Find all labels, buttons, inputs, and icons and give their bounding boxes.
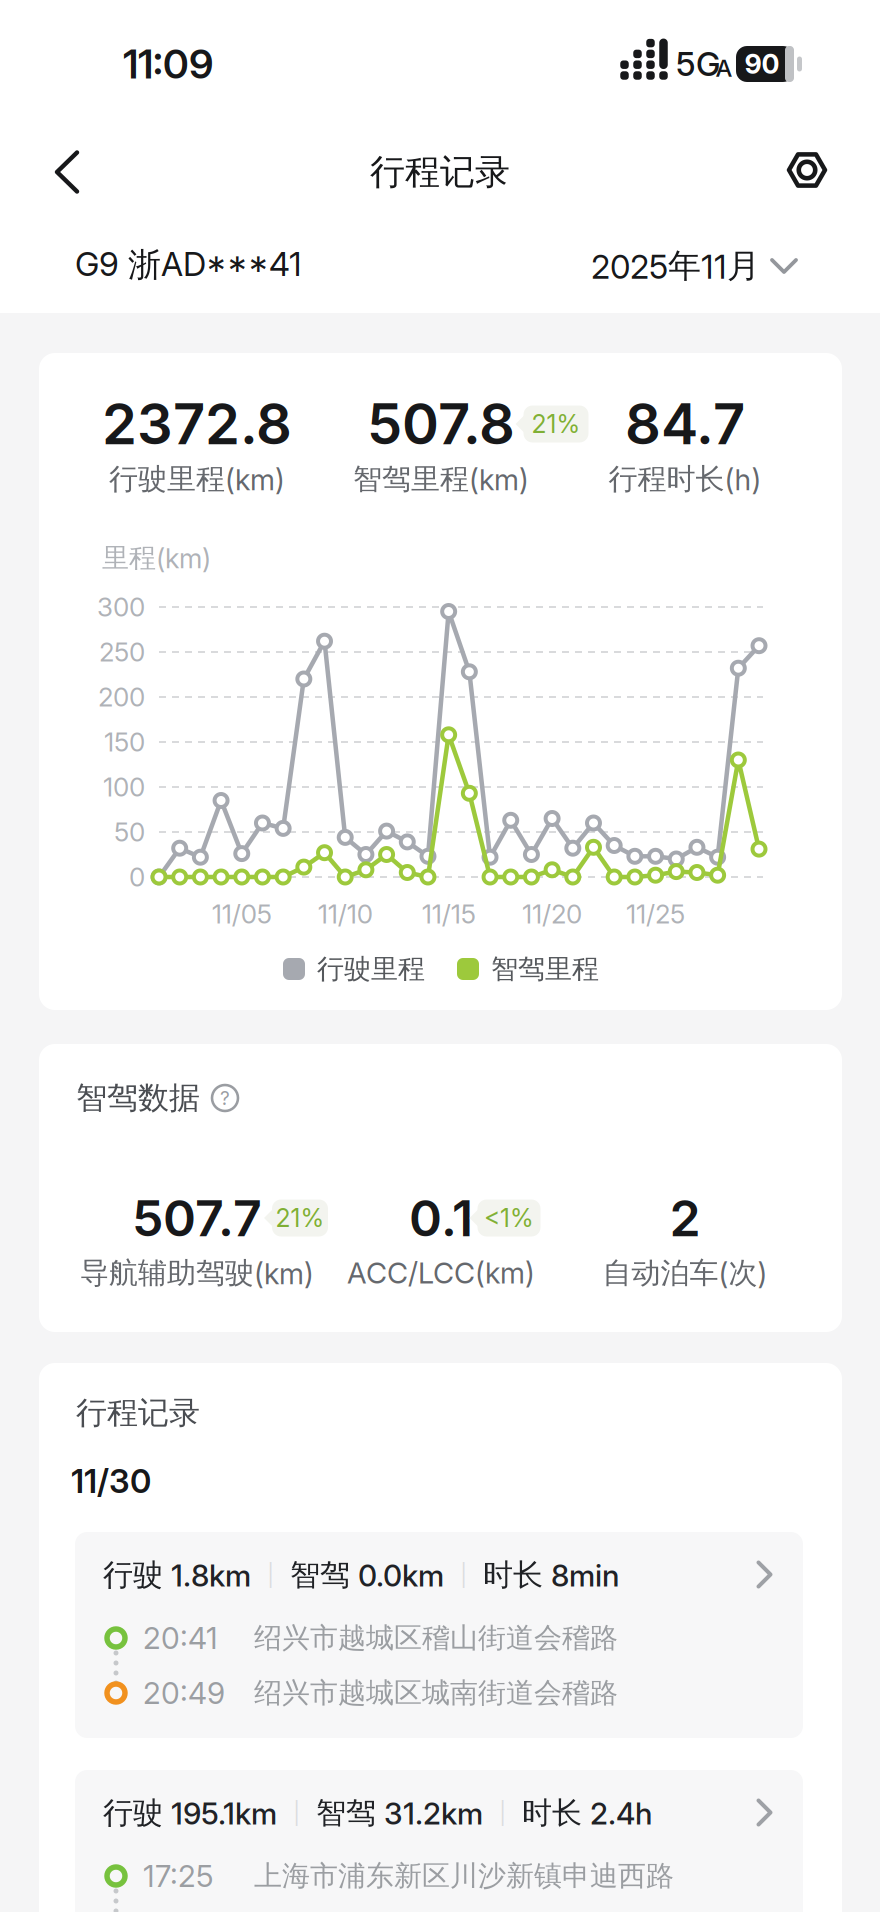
button[interactable]: Back [44, 140, 90, 203]
staticText: 11/05 [212, 898, 272, 930]
staticText: 90 [744, 48, 779, 80]
staticText: 绍兴市越城区稽山街道会稽路 [254, 1620, 618, 1656]
staticText: 21% [531, 409, 580, 439]
staticText: 自动泊车(次) [602, 1255, 767, 1291]
staticText: 507.7 [132, 1188, 262, 1248]
button[interactable]: 选择月份 [478, 245, 798, 287]
staticText: 507.8 [367, 390, 515, 458]
staticText: 11/25 [626, 898, 685, 930]
staticText: 行驶 195.1km [103, 1794, 277, 1832]
staticText: 20:49 [143, 1675, 225, 1711]
staticText: 11:09 [123, 40, 213, 88]
staticText: ACC/LCC(km) [347, 1255, 535, 1291]
staticText: <1% [484, 1203, 534, 1233]
staticText: A [715, 53, 732, 82]
staticText: 上海市浦东新区川沙新镇申迪西路 [254, 1858, 674, 1894]
button[interactable]: 行驶 195.1km [75, 1770, 803, 1912]
staticText: 200 [98, 681, 145, 713]
staticText: 11/20 [522, 898, 582, 930]
staticText: 50 [114, 816, 145, 848]
staticText: 时长 2.4h [522, 1794, 652, 1832]
staticText: 行驶 1.8km [103, 1556, 251, 1594]
staticText: 21% [275, 1203, 324, 1233]
staticText: 智驾 31.2km [316, 1794, 483, 1832]
staticText: 250 [99, 636, 145, 668]
staticText: ? [220, 1086, 230, 1109]
staticText: 智驾里程(km) [353, 461, 529, 497]
staticText: 行驶里程 [317, 952, 425, 986]
staticText: 2 [669, 1188, 700, 1248]
staticText: 智驾 0.0km [290, 1556, 444, 1594]
staticText: 11/10 [318, 898, 373, 930]
button[interactable]: 智驾数据说明 [210, 1083, 240, 1113]
staticText: 11/15 [422, 898, 476, 930]
staticText: 300 [97, 591, 145, 623]
staticText: 智驾里程 [491, 952, 599, 986]
staticText: 行程记录 [370, 150, 510, 194]
staticText: | [293, 1800, 300, 1826]
staticText: 100 [103, 771, 145, 803]
staticText: G9 浙AD***41 [75, 244, 302, 286]
staticText: 17:25 [143, 1858, 214, 1894]
staticText: | [460, 1562, 467, 1588]
button[interactable]: Settings [777, 140, 837, 200]
staticText: 2372.8 [102, 390, 292, 458]
staticText: 150 [104, 726, 145, 758]
staticText: 里程(km) [102, 541, 211, 575]
staticText: 0 [129, 861, 145, 893]
staticText: 11/30 [71, 1461, 151, 1501]
staticText: 20:41 [143, 1620, 218, 1656]
staticText: 智驾数据 [76, 1078, 200, 1118]
staticText: 0.1 [409, 1188, 473, 1248]
staticText: 行程记录 [76, 1393, 200, 1433]
staticText: 行程时长(h) [608, 461, 761, 497]
staticText: 导航辅助驾驶(km) [80, 1255, 314, 1291]
staticText: 5G [676, 44, 720, 84]
staticText: 2025年11月 [591, 245, 760, 287]
button[interactable]: 行驶 1.8km [75, 1532, 803, 1738]
staticText: | [267, 1562, 274, 1588]
staticText: 绍兴市越城区城南街道会稽路 [254, 1675, 618, 1711]
staticText: | [499, 1800, 506, 1826]
staticText: 行驶里程(km) [109, 461, 285, 497]
staticText: 时长 8min [483, 1556, 619, 1594]
staticText: 84.7 [625, 390, 745, 458]
